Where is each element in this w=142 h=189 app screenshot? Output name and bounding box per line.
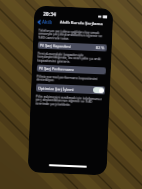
staticText: Piliniz normal performans kapasitesini d… xyxy=(36,74,106,84)
staticText: Pilin eskimesini azaltmak için telefonun… xyxy=(35,94,105,108)
button[interactable]: Pil Şarj Performansı xyxy=(37,65,106,74)
button[interactable]: Optimize şarj aç kapat xyxy=(93,87,104,93)
button[interactable]: Optimize Şarj İşlemi xyxy=(36,84,105,94)
button[interactable]: Pil Şarj Kapasitesi xyxy=(38,42,107,51)
staticText: Pil Şarj Performansı xyxy=(39,66,74,72)
staticText: Pil Şarj Kapasitesi xyxy=(40,43,72,49)
staticText: 82 % xyxy=(96,45,105,50)
button[interactable]: Akıllı xyxy=(38,19,53,25)
staticText: Akıllı xyxy=(42,19,53,25)
staticText: Telefonun şarj olma sağlığını korumak am… xyxy=(38,28,107,42)
staticText: Yeni durumdaki kapasitesiyle karşılaştır… xyxy=(37,51,106,65)
staticText: Optimize Şarj İşlemi xyxy=(38,86,74,92)
staticText: 20:34 xyxy=(43,11,56,17)
staticText: Akıllı Kurulu Şarjlama xyxy=(60,19,103,27)
